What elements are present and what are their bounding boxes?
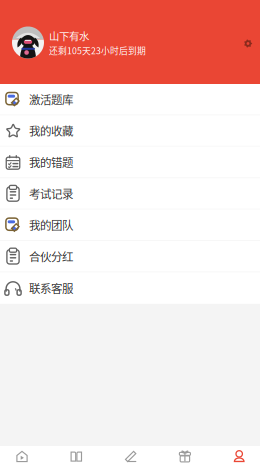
staticText: 我的收藏 <box>29 122 73 139</box>
staticText: 还剩105天23小时后到期 <box>49 44 146 57</box>
button[interactable]: Profile photo <box>12 26 44 58</box>
staticText: 联系客服 <box>29 280 73 296</box>
staticText: 合伙分红 <box>29 248 73 264</box>
staticText: 我的团队 <box>29 216 73 233</box>
staticText: 激活题库 <box>29 91 73 107</box>
button[interactable]: 联系客服 <box>0 272 260 304</box>
button[interactable]: 我的错题 <box>0 147 260 178</box>
button[interactable]: 首页 <box>0 438 44 467</box>
staticText: 我的错题 <box>29 154 73 170</box>
button[interactable]: 活动中心 <box>163 438 207 467</box>
button[interactable]: 合伙分红 <box>0 241 260 272</box>
button[interactable]: 激活题库 <box>0 84 260 115</box>
button[interactable]: 考试记录 <box>0 178 260 210</box>
staticText: 考试记录 <box>29 185 73 202</box>
button[interactable]: 题库 <box>54 438 98 467</box>
staticText: 山下有水 <box>49 28 89 43</box>
button[interactable]: 我的 <box>217 438 260 467</box>
button[interactable]: 我的团队 <box>0 210 260 241</box>
button[interactable]: Settings <box>238 33 258 53</box>
button[interactable]: 我的收藏 <box>0 115 260 147</box>
button[interactable]: 练习 <box>109 438 153 467</box>
